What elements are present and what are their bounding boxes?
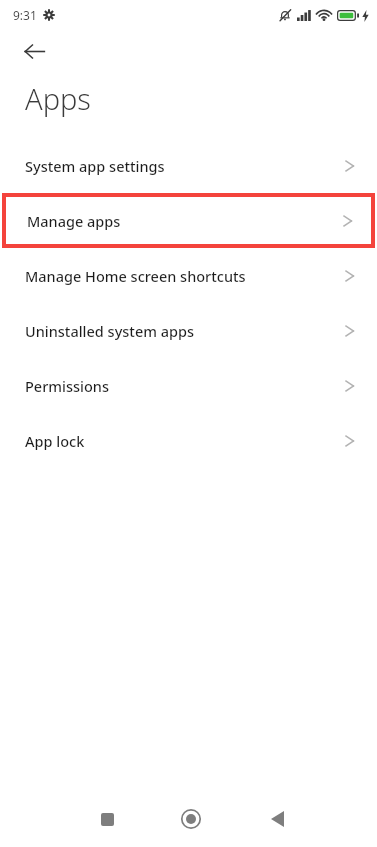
button[interactable]: Uninstalled system apps bbox=[0, 303, 377, 358]
button[interactable]: App lock bbox=[0, 413, 377, 468]
staticText: 9:31 bbox=[13, 7, 37, 23]
button[interactable]: System app settings bbox=[0, 138, 377, 193]
staticText: Apps bbox=[25, 79, 91, 118]
button[interactable]: Home bbox=[125, 791, 251, 847]
staticText: App lock bbox=[25, 431, 343, 451]
staticText: Manage Home screen shortcuts bbox=[25, 266, 343, 286]
button[interactable]: Recent apps bbox=[0, 791, 125, 847]
button[interactable]: Manage apps bbox=[6, 197, 371, 244]
button[interactable]: Manage Home screen shortcuts bbox=[0, 248, 377, 303]
staticText: Uninstalled system apps bbox=[25, 321, 343, 341]
staticText: System app settings bbox=[25, 156, 343, 176]
button[interactable]: Back bbox=[11, 30, 57, 72]
staticText: Permissions bbox=[25, 376, 343, 396]
staticText: Manage apps bbox=[27, 211, 341, 231]
button[interactable]: Permissions bbox=[0, 358, 377, 413]
button[interactable]: Back bbox=[251, 791, 377, 847]
